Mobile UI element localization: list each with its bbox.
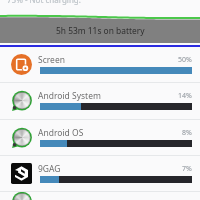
staticText: 50%: [178, 55, 192, 65]
button[interactable]: Android System: [0, 192, 200, 200]
button[interactable]: Screen: [0, 47, 200, 82]
staticText: 14%: [178, 91, 192, 101]
button[interactable]: Android System: [0, 120, 200, 156]
other: Android System: [11, 192, 32, 200]
staticText: 8%: [182, 128, 192, 138]
staticText: Screen: [38, 54, 65, 66]
staticText: 7%: [182, 164, 192, 174]
staticText: Android System: [38, 90, 101, 102]
other: Screen: [11, 54, 32, 75]
button[interactable]: Android System: [0, 83, 200, 119]
other: Android System: [11, 128, 32, 149]
other: 9GAG: [11, 163, 32, 184]
staticText: Android OS: [38, 127, 84, 139]
staticText: 75% - Not charging.: [7, 0, 81, 5]
other: Android System: [11, 91, 32, 112]
button[interactable]: 9GAG: [0, 156, 200, 191]
staticText: 9GAG: [38, 163, 61, 175]
staticText: 5h 53m 11s on battery: [56, 25, 145, 36]
